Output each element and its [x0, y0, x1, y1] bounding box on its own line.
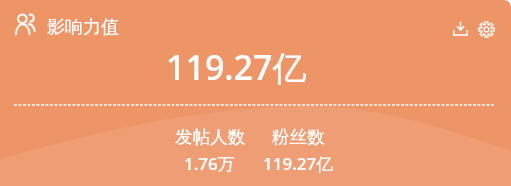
- button[interactable]: 影响力值: [15, 13, 119, 36]
- staticText: 粉丝数: [272, 126, 325, 148]
- button[interactable]: Settings: [473, 16, 499, 42]
- staticText: 发帖人数: [175, 126, 245, 148]
- button[interactable]: Download: [447, 15, 473, 41]
- staticText: 119.27亿: [263, 152, 334, 175]
- staticText: 1.76万: [184, 152, 235, 175]
- staticText: 影响力值: [47, 16, 119, 39]
- staticText: 119.27亿: [166, 44, 307, 90]
